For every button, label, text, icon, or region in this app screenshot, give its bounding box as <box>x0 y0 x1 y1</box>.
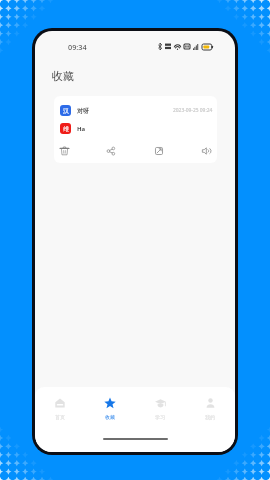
staticText: 我的 <box>205 414 215 420</box>
staticText: 09:34 <box>68 42 87 52</box>
staticText: 收藏 <box>52 69 74 83</box>
staticText: 维 <box>63 125 69 133</box>
button[interactable]: Delete <box>56 143 72 159</box>
button[interactable]: 收藏 <box>85 387 135 425</box>
button[interactable]: Open full screen <box>151 143 167 159</box>
staticText: 2023-09-25 09:24 <box>173 107 213 114</box>
staticText: Ha <box>77 125 86 133</box>
staticText: 首页 <box>55 414 65 420</box>
staticText: 汉 <box>63 107 69 115</box>
staticText: 学习 <box>155 414 165 420</box>
button[interactable]: 首页 <box>35 387 85 425</box>
button[interactable]: 我的 <box>185 387 235 425</box>
staticText: 收藏 <box>105 414 115 420</box>
staticText: 对呀 <box>77 107 89 115</box>
button[interactable]: Play audio <box>198 143 214 159</box>
button[interactable]: 学习 <box>135 387 185 425</box>
button[interactable]: 汉 <box>54 96 217 163</box>
button[interactable]: Share <box>103 143 119 159</box>
